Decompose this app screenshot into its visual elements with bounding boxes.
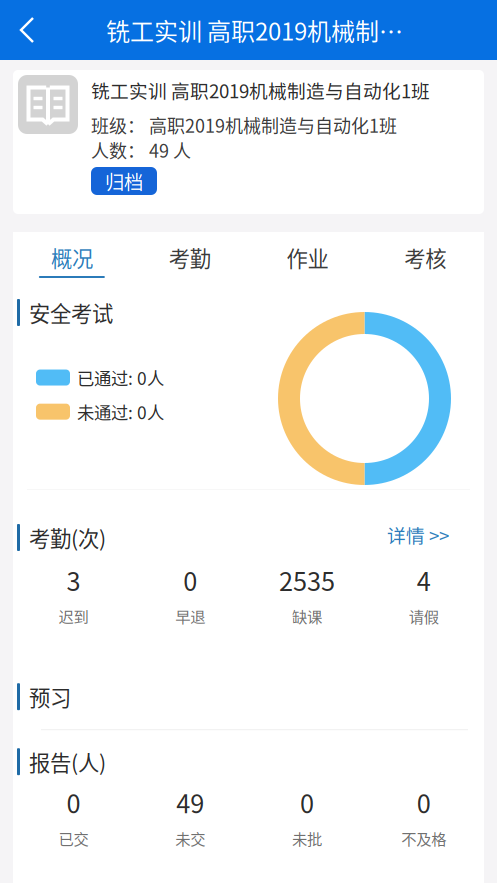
staticText: 班级： 高职2019机械制造与自动化1班: [91, 112, 397, 138]
staticText: 已通过: 0人: [77, 365, 164, 390]
staticText: 概况: [51, 242, 93, 273]
staticText: 未交: [175, 827, 205, 849]
staticText: 0: [183, 562, 197, 598]
staticText: 3: [66, 562, 80, 598]
staticText: 2535: [279, 562, 335, 598]
staticText: 未批: [292, 827, 322, 849]
staticText: 考勤(次): [29, 522, 106, 553]
staticText: 报告(人): [29, 746, 106, 777]
staticText: 缺课: [292, 605, 322, 627]
staticText: 已交: [58, 827, 88, 849]
staticText: 不及格: [401, 827, 446, 849]
staticText: 考核: [404, 242, 446, 273]
staticText: 49: [176, 784, 204, 821]
staticText: 详情 >>: [387, 521, 449, 548]
staticText: 0: [417, 784, 431, 821]
staticText: 请假: [409, 605, 439, 627]
staticText: 4: [417, 562, 431, 598]
button[interactable]: 考核: [366, 242, 484, 282]
staticText: 归档: [105, 167, 143, 195]
button[interactable]: 作业: [248, 242, 366, 282]
staticText: 0: [300, 784, 314, 821]
staticText: 铣工实训 高职2019机械制造与自动化1班: [91, 76, 430, 103]
staticText: 迟到: [58, 605, 88, 627]
staticText: 预习: [29, 681, 71, 712]
staticText: 未通过: 0人: [77, 399, 164, 424]
staticText: 早退: [175, 605, 205, 627]
button[interactable]: Back: [0, 13, 56, 47]
staticText: 铣工实训 高职2019机械制…: [106, 13, 403, 47]
staticText: 安全考试: [29, 297, 113, 328]
staticText: 人数： 49 人: [91, 137, 191, 163]
staticText: 考勤: [169, 242, 211, 273]
button[interactable]: 详情 >>: [387, 527, 449, 548]
button[interactable]: 归档: [91, 167, 157, 195]
button[interactable]: 概况: [13, 242, 131, 282]
button[interactable]: 考勤: [131, 242, 249, 282]
staticText: 作业: [286, 242, 328, 273]
staticText: 0: [66, 784, 80, 821]
